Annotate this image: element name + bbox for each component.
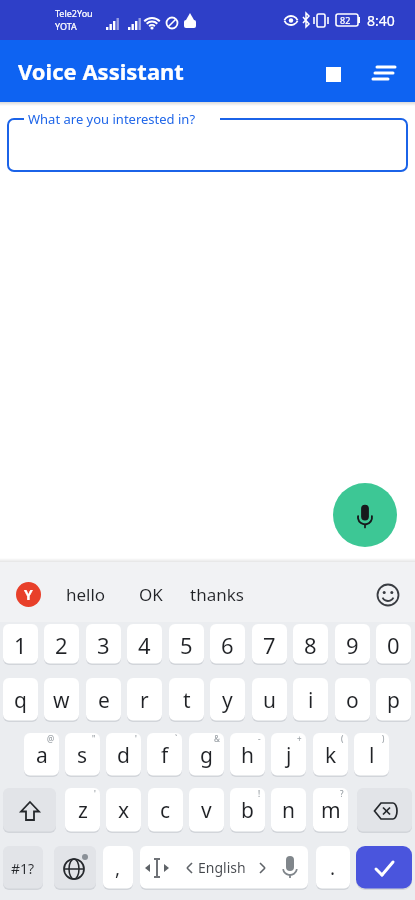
- button[interactable]: f: [147, 733, 182, 777]
- button[interactable]: .: [316, 846, 350, 890]
- button[interactable]: 1: [3, 624, 38, 665]
- staticText: j: [286, 741, 292, 770]
- staticText: Voice Assistant: [18, 56, 184, 86]
- staticText: 7: [263, 630, 276, 660]
- staticText: t: [183, 686, 191, 715]
- button[interactable]: 6: [210, 624, 245, 665]
- button[interactable]: l: [354, 733, 389, 777]
- staticText: 3: [97, 630, 110, 660]
- staticText: Y: [24, 585, 33, 604]
- staticText: c: [160, 796, 171, 825]
- staticText: 0: [387, 630, 400, 660]
- staticText: y: [222, 686, 233, 715]
- button[interactable]: w: [44, 678, 79, 722]
- staticText: o: [346, 686, 359, 715]
- staticText: n: [282, 796, 295, 825]
- staticText: .: [330, 855, 336, 881]
- button[interactable]: ,: [103, 846, 133, 890]
- staticText: 6: [221, 630, 234, 660]
- staticText: ?: [340, 788, 344, 799]
- staticText: (: [341, 733, 344, 744]
- staticText: Tele2You: [55, 7, 93, 19]
- button[interactable]: [356, 846, 412, 890]
- staticText: `: [175, 733, 178, 744]
- staticText: -: [258, 733, 261, 744]
- staticText: s: [77, 741, 88, 770]
- button[interactable]: v: [189, 788, 224, 833]
- button[interactable]: 4: [127, 624, 162, 665]
- button[interactable]: English: [140, 846, 308, 890]
- staticText: 1: [14, 630, 27, 660]
- staticText: @: [47, 733, 55, 744]
- button[interactable]: [3, 788, 56, 833]
- button[interactable]: a: [24, 733, 59, 777]
- button[interactable]: q: [3, 678, 38, 722]
- staticText: r: [140, 686, 149, 715]
- staticText: ": [92, 733, 96, 744]
- button[interactable]: [360, 53, 408, 93]
- button[interactable]: n: [271, 788, 306, 833]
- staticText: i: [308, 686, 314, 715]
- staticText: &: [214, 733, 220, 744]
- button[interactable]: Y: [16, 582, 41, 607]
- staticText: q: [14, 686, 27, 715]
- staticText: !: [258, 788, 261, 799]
- staticText: f: [161, 741, 169, 770]
- staticText: +: [297, 733, 302, 744]
- staticText: x: [118, 796, 130, 825]
- button[interactable]: g: [189, 733, 224, 777]
- button[interactable]: z: [65, 788, 100, 833]
- button[interactable]: 3: [86, 624, 121, 665]
- staticText: e: [98, 686, 110, 715]
- button[interactable]: OK: [139, 583, 163, 606]
- button[interactable]: [7, 118, 408, 172]
- staticText: 82: [340, 14, 351, 26]
- button[interactable]: [372, 579, 404, 611]
- staticText: z: [78, 796, 88, 825]
- button[interactable]: 2: [44, 624, 79, 665]
- button[interactable]: c: [148, 788, 183, 833]
- button[interactable]: 0: [376, 624, 411, 665]
- button[interactable]: hello: [66, 583, 106, 606]
- staticText: English: [198, 858, 246, 877]
- button[interactable]: k: [313, 733, 348, 777]
- button[interactable]: #1?: [3, 846, 43, 890]
- staticText: 8:40: [367, 11, 395, 30]
- button[interactable]: s: [65, 733, 100, 777]
- button[interactable]: i: [293, 678, 328, 722]
- button[interactable]: 5: [169, 624, 204, 665]
- staticText: ': [135, 733, 137, 744]
- button[interactable]: [333, 483, 397, 547]
- button[interactable]: thanks: [190, 583, 244, 606]
- button[interactable]: y: [210, 678, 245, 722]
- staticText: 9: [346, 630, 359, 660]
- button[interactable]: j: [271, 733, 306, 777]
- staticText: v: [201, 796, 212, 825]
- staticText: #1?: [11, 859, 35, 878]
- button[interactable]: p: [376, 678, 411, 722]
- button[interactable]: e: [86, 678, 121, 722]
- button[interactable]: b: [230, 788, 265, 833]
- button[interactable]: u: [252, 678, 287, 722]
- button[interactable]: 8: [293, 624, 328, 665]
- staticText: 2: [55, 630, 68, 660]
- staticText: u: [263, 686, 276, 715]
- staticText: 4: [138, 630, 151, 660]
- button[interactable]: 9: [335, 624, 370, 665]
- button[interactable]: [357, 788, 412, 833]
- button[interactable]: [313, 54, 353, 94]
- button[interactable]: r: [127, 678, 162, 722]
- button[interactable]: d: [106, 733, 141, 777]
- staticText: p: [387, 686, 400, 715]
- button[interactable]: x: [106, 788, 141, 833]
- staticText: What are you interested in?: [28, 110, 196, 128]
- button[interactable]: h: [230, 733, 265, 777]
- button[interactable]: m: [313, 788, 348, 833]
- button[interactable]: [54, 846, 96, 890]
- staticText: ): [382, 733, 385, 744]
- button[interactable]: o: [335, 678, 370, 722]
- button[interactable]: t: [169, 678, 204, 722]
- button[interactable]: 7: [252, 624, 287, 665]
- staticText: l: [369, 741, 375, 770]
- staticText: m: [321, 796, 341, 825]
